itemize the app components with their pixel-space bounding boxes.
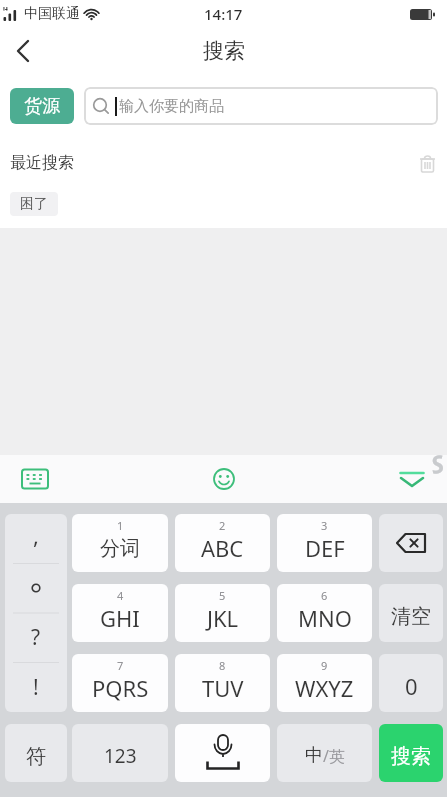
button[interactable] (0, 28, 46, 74)
button[interactable]: 搜索 (379, 724, 443, 782)
button[interactable]: 0 (379, 654, 443, 712)
staticText: 输入你要的商品 (119, 97, 224, 116)
staticText: 3 (321, 518, 328, 533)
staticText: S (428, 446, 447, 481)
staticText: 分词 (100, 536, 140, 561)
button[interactable]: 输入你要的商品 (84, 87, 438, 125)
button[interactable]: 7 (72, 654, 168, 712)
staticText: 困了 (20, 195, 48, 213)
staticText: 符 (26, 744, 46, 769)
staticText: 中 (305, 744, 323, 767)
button[interactable]: 6 (277, 584, 372, 642)
staticText: PQRS (92, 673, 149, 703)
button[interactable] (418, 154, 437, 173)
button[interactable]: 9 (277, 654, 372, 712)
staticText: 7 (117, 658, 124, 673)
button[interactable]: 1 (72, 514, 168, 572)
button[interactable]: 2 (175, 514, 270, 572)
button[interactable]: , (5, 514, 67, 712)
button[interactable]: 符 (5, 724, 67, 782)
button[interactable] (175, 724, 270, 782)
button[interactable]: 8 (175, 654, 270, 712)
staticText: 14:17 (204, 4, 243, 24)
staticText: 0 (405, 671, 418, 701)
staticText: 货源 (24, 95, 60, 118)
button[interactable]: 4 (72, 584, 168, 642)
button[interactable] (379, 514, 443, 572)
button[interactable]: 3 (277, 514, 372, 572)
staticText: MNO (298, 603, 352, 633)
staticText: ! (33, 673, 39, 702)
button[interactable] (21, 468, 49, 490)
staticText: 8 (219, 658, 226, 673)
staticText: DEF (305, 533, 345, 563)
button[interactable] (212, 467, 236, 491)
staticText: 搜索 (391, 744, 431, 769)
staticText: JKL (207, 603, 239, 633)
staticText: 清空 (391, 604, 431, 629)
button[interactable]: 5 (175, 584, 270, 642)
staticText: 中国联通 (24, 5, 80, 23)
staticText: GHI (100, 603, 140, 633)
button[interactable] (398, 470, 426, 490)
staticText: 6 (321, 588, 328, 603)
staticText: 1 (117, 518, 124, 533)
staticText: 9 (321, 658, 328, 673)
button[interactable]: 中 (277, 724, 372, 782)
staticText: 搜索 (203, 38, 245, 64)
staticText: , (33, 520, 39, 550)
staticText: WXYZ (295, 673, 354, 703)
staticText: TUV (202, 673, 244, 703)
button[interactable]: 123 (72, 724, 168, 782)
staticText: ? (31, 623, 41, 652)
staticText: 5 (219, 588, 226, 603)
staticText: 123 (104, 743, 137, 769)
button[interactable]: 货源 (10, 88, 74, 124)
button[interactable]: 困了 (10, 192, 58, 216)
button[interactable]: 清空 (379, 584, 443, 642)
staticText: ABC (201, 533, 244, 563)
staticText: 最近搜索 (10, 153, 74, 173)
staticText: 4 (117, 588, 124, 603)
staticText: 2 (219, 518, 226, 533)
staticText: /英 (323, 745, 345, 767)
